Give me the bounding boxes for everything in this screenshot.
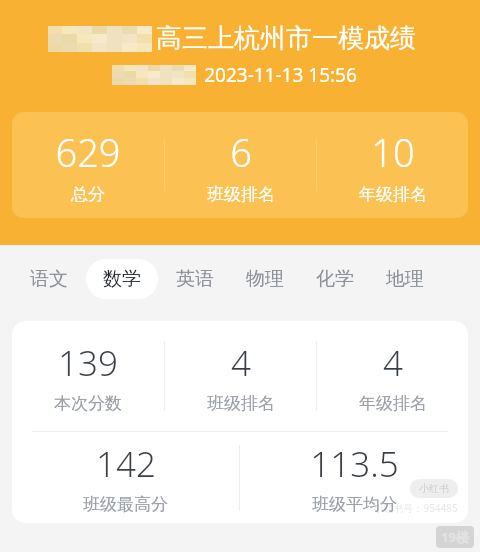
staticText: 139 xyxy=(58,339,118,387)
staticText: 142 xyxy=(96,440,156,488)
staticText: 物理 xyxy=(246,267,284,291)
staticText: 6 xyxy=(230,126,252,178)
staticText: 113.5 xyxy=(310,440,399,488)
button[interactable]: 语文 xyxy=(16,259,82,299)
staticText: 班级平均分 xyxy=(312,494,397,515)
staticText: 2023-11-13 15:56 xyxy=(204,62,357,88)
button[interactable]: 物理 xyxy=(232,259,298,299)
button[interactable]: 139 xyxy=(12,321,468,523)
button[interactable]: 化学 xyxy=(302,259,368,299)
button[interactable]: 629 xyxy=(12,112,468,218)
button[interactable]: 地理 xyxy=(372,259,438,299)
staticText: 语文 xyxy=(30,267,68,291)
staticText: 小红书 xyxy=(419,482,449,495)
staticText: 班级排名 xyxy=(207,393,275,414)
staticText: 化学 xyxy=(316,267,354,291)
staticText: 总分 xyxy=(71,184,105,205)
staticText: 4 xyxy=(383,339,403,387)
staticText: 年级排名 xyxy=(359,393,427,414)
staticText: 19楼 xyxy=(441,528,469,546)
staticText: 629 xyxy=(55,126,121,178)
staticText: 小红书号：954485 xyxy=(373,501,458,515)
staticText: 本次分数 xyxy=(54,393,122,414)
staticText: 班级最高分 xyxy=(83,494,168,515)
staticText: 英语 xyxy=(176,267,214,291)
staticText: 班级排名 xyxy=(207,184,275,205)
staticText: 10 xyxy=(371,126,415,178)
button[interactable]: 英语 xyxy=(162,259,228,299)
staticText: 4 xyxy=(231,339,251,387)
staticText: 地理 xyxy=(386,267,424,291)
staticText: 高三上杭州市一模成绩 xyxy=(156,22,416,55)
button[interactable]: 数学 xyxy=(86,259,158,299)
staticText: 数学 xyxy=(103,267,141,291)
staticText: 年级排名 xyxy=(359,184,427,205)
